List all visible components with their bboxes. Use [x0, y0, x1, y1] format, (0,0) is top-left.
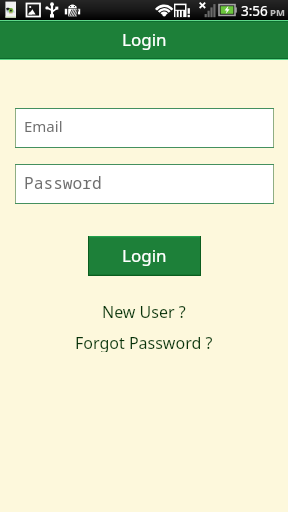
button[interactable]: Login: [88, 236, 201, 276]
staticText: New User ?: [102, 301, 186, 321]
staticText: Login: [122, 28, 167, 51]
button[interactable]: New User ?: [0, 301, 288, 321]
button[interactable]: Password: [15, 164, 274, 204]
button[interactable]: Email: [15, 108, 274, 148]
staticText: 3:56: [241, 2, 268, 20]
staticText: PM: [270, 6, 285, 19]
button[interactable]: Forgot Password ?: [0, 332, 288, 352]
staticText: Login: [122, 244, 167, 267]
staticText: Email: [24, 116, 63, 136]
staticText: Password: [24, 172, 102, 194]
staticText: Forgot Password ?: [75, 332, 213, 352]
